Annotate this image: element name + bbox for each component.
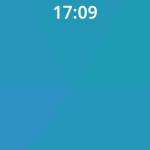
staticText: 17:09 — [52, 0, 97, 23]
